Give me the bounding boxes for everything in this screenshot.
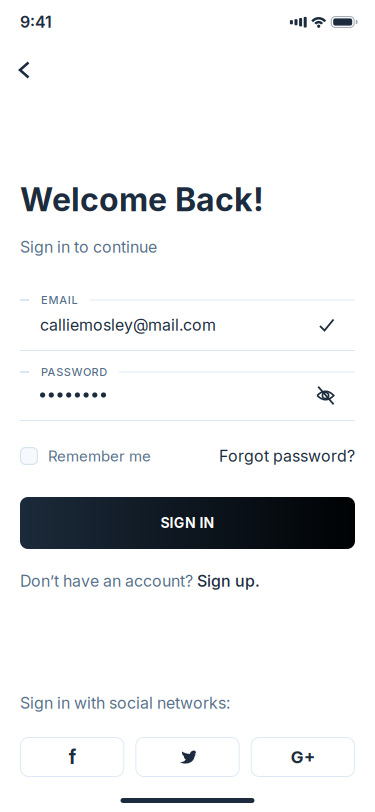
staticText: Sign in with social networks: [20,694,230,712]
staticText: Forgot password? [219,447,355,465]
staticText: f [69,746,76,768]
button[interactable]: Remember me [20,447,151,465]
staticText: PASSWORD [41,365,107,378]
staticText: EMAIL [41,293,77,306]
button[interactable]: Sign in with Twitter [135,737,240,777]
staticText: Sign in to continue [20,238,157,256]
button[interactable]: SIGN IN [20,497,355,549]
staticText: Don’t have an account? [20,572,197,590]
staticText: calliemosley@mail.com [40,316,216,334]
staticText: SIGN IN [160,515,215,531]
button[interactable]: Sign in with Facebook [20,737,124,777]
staticText: Welcome Back! [20,181,264,218]
button[interactable]: Sign in with Google [251,737,355,777]
button[interactable]: Show password [315,384,355,405]
staticText: 9:41 [20,13,52,31]
staticText: Sign up. [197,572,260,590]
staticText: G+ [291,747,315,767]
staticText: Remember me [48,447,151,465]
button[interactable]: Forgot password? [219,447,355,465]
button[interactable]: Back [20,57,31,75]
button[interactable]: Sign up. [197,572,260,590]
